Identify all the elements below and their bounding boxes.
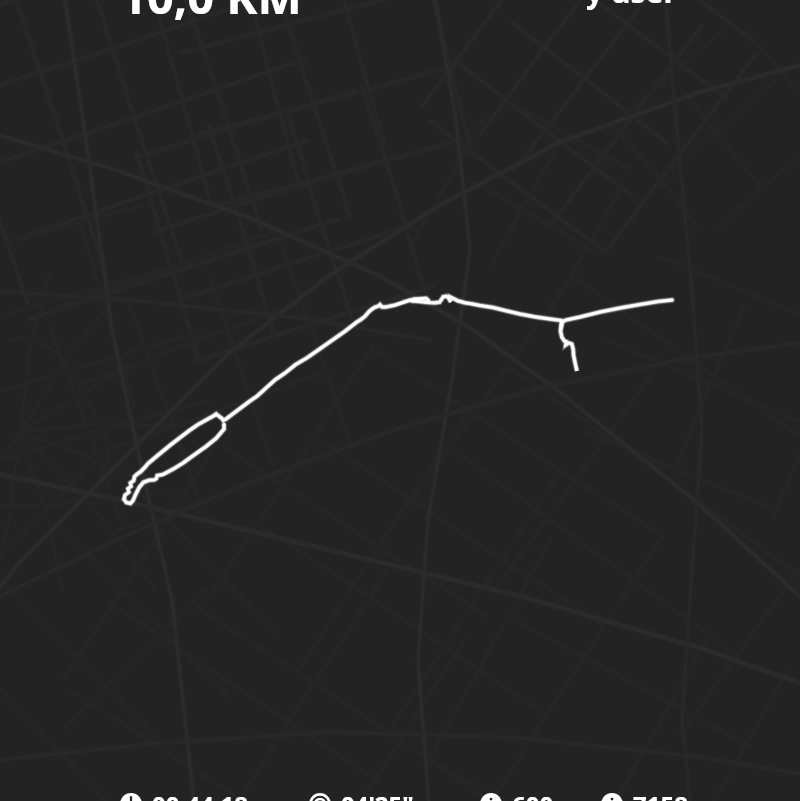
other: Clock xyxy=(120,793,142,801)
other: Steps xyxy=(601,793,623,801)
staticText: 10,0 KM xyxy=(120,0,302,28)
staticText: 04'25" xyxy=(341,788,414,801)
other: Fire xyxy=(480,793,502,801)
button[interactable]: Clock xyxy=(120,787,248,801)
staticText: 00:44:18 xyxy=(152,788,248,801)
staticText: y user xyxy=(586,0,677,12)
button[interactable]: Pace xyxy=(309,787,414,801)
button[interactable]: Steps xyxy=(601,787,688,801)
other: Pace xyxy=(309,793,331,801)
button[interactable]: 10,0 KM xyxy=(120,0,302,28)
staticText: 7158 xyxy=(633,788,688,801)
staticText: 600 xyxy=(512,788,554,801)
button[interactable]: y user xyxy=(586,0,677,12)
button[interactable]: Fire xyxy=(480,787,554,801)
